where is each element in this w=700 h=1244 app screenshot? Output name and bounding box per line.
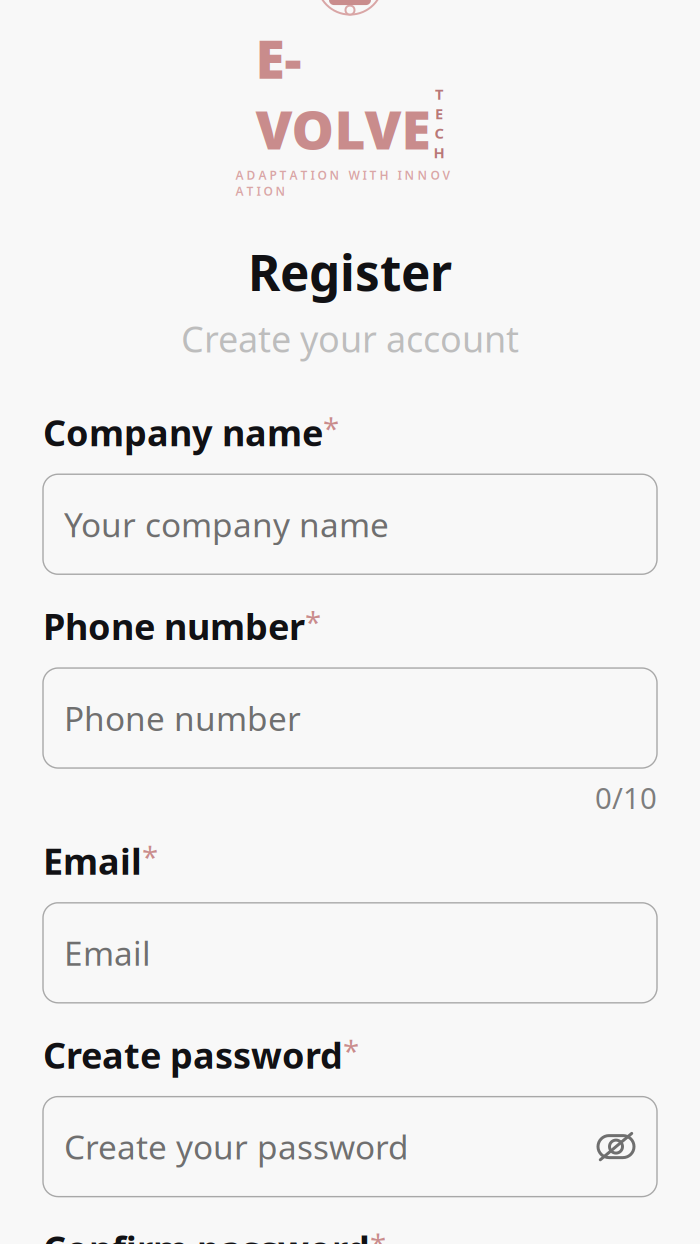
staticText: Company name bbox=[43, 408, 323, 456]
staticText: * bbox=[343, 1031, 359, 1070]
staticText: H bbox=[433, 143, 444, 162]
staticText: Email bbox=[43, 837, 142, 885]
staticText: Email bbox=[64, 931, 151, 975]
staticText: Your company name bbox=[64, 502, 389, 546]
staticText: T bbox=[435, 84, 443, 104]
staticText: * bbox=[323, 408, 339, 447]
staticText: * bbox=[142, 837, 158, 876]
staticText: * bbox=[305, 602, 321, 641]
staticText: Create your password bbox=[64, 1124, 409, 1169]
staticText: * bbox=[370, 1225, 386, 1244]
button[interactable]: Create your password bbox=[43, 1097, 657, 1197]
button[interactable]: Your company name bbox=[43, 474, 657, 574]
staticText: C bbox=[434, 123, 443, 143]
staticText: Phone number bbox=[43, 602, 305, 650]
staticText: 0/10 bbox=[595, 778, 657, 817]
staticText: E-VOLVE bbox=[255, 23, 430, 164]
staticText: Confirm password bbox=[43, 1225, 370, 1244]
staticText: Register bbox=[248, 239, 452, 305]
button[interactable]: Phone number bbox=[43, 668, 657, 768]
button[interactable]: Email bbox=[43, 903, 657, 1003]
staticText: Phone number bbox=[64, 696, 301, 740]
staticText: A D A P T A T I O N W I T H I N N O V A … bbox=[235, 167, 450, 199]
staticText: Create your account bbox=[181, 315, 519, 362]
staticText: Create password bbox=[43, 1031, 343, 1079]
staticText: E bbox=[435, 104, 443, 123]
